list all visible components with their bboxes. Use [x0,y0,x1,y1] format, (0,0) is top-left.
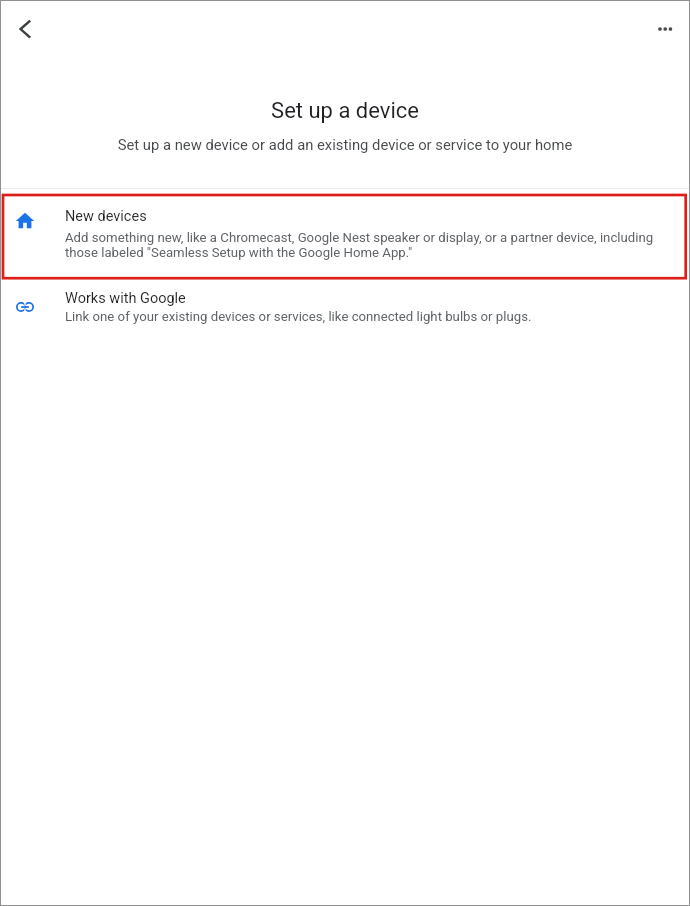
button[interactable]: New devices [1,192,689,280]
button[interactable]: Works with Google [1,282,689,332]
staticText: Set up a new device or add an existing d… [1,136,689,153]
staticText: Works with Google [65,290,186,307]
button[interactable]: Back [9,13,43,47]
staticText: Link one of your existing devices or ser… [65,309,532,324]
staticText: New devices [65,208,147,225]
staticText: Set up a device [1,98,689,124]
button[interactable]: More options [649,13,683,47]
staticText: Add something new, like a Chromecast, Go… [65,230,657,260]
